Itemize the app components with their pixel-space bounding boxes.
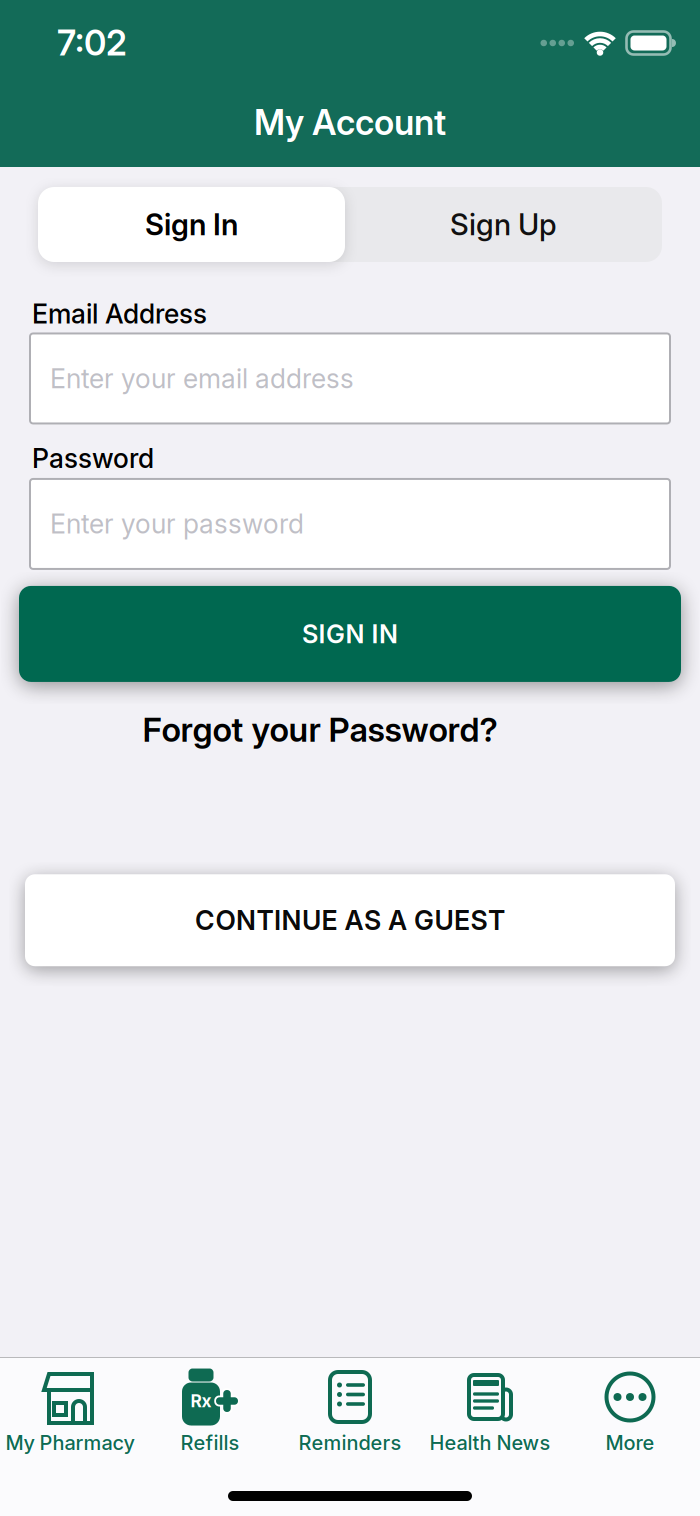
button[interactable]: Sign Up: [345, 187, 662, 262]
staticText: Rx: [190, 1391, 211, 1411]
staticText: Enter your password: [50, 508, 304, 540]
staticText: CONTINUE AS A GUEST: [195, 904, 505, 936]
staticText: Sign Up: [450, 207, 557, 242]
button[interactable]: Reminders: [280, 1368, 420, 1455]
button[interactable]: Sign In: [38, 187, 345, 262]
staticText: SIGN IN: [302, 619, 398, 649]
staticText: Health News: [429, 1431, 550, 1455]
button[interactable]: Health News: [420, 1368, 560, 1455]
staticText: Password: [32, 442, 154, 474]
staticText: Forgot your Password?: [142, 710, 497, 749]
staticText: Email Address: [32, 298, 207, 329]
staticText: Refills: [180, 1431, 239, 1455]
staticText: 7:02: [57, 23, 127, 63]
staticText: Reminders: [298, 1431, 401, 1455]
button[interactable]: Rx: [140, 1368, 280, 1455]
staticText: My Account: [254, 102, 446, 143]
button[interactable]: Forgot your Password?: [0, 710, 640, 749]
staticText: More: [605, 1431, 654, 1455]
staticText: Enter your email address: [50, 363, 354, 394]
button[interactable]: More: [560, 1368, 700, 1455]
staticText: Sign In: [145, 207, 238, 242]
button[interactable]: SIGN IN: [19, 586, 681, 682]
staticText: My Pharmacy: [5, 1431, 134, 1455]
button[interactable]: CONTINUE AS A GUEST: [25, 874, 675, 966]
button[interactable]: My Pharmacy: [0, 1368, 140, 1455]
